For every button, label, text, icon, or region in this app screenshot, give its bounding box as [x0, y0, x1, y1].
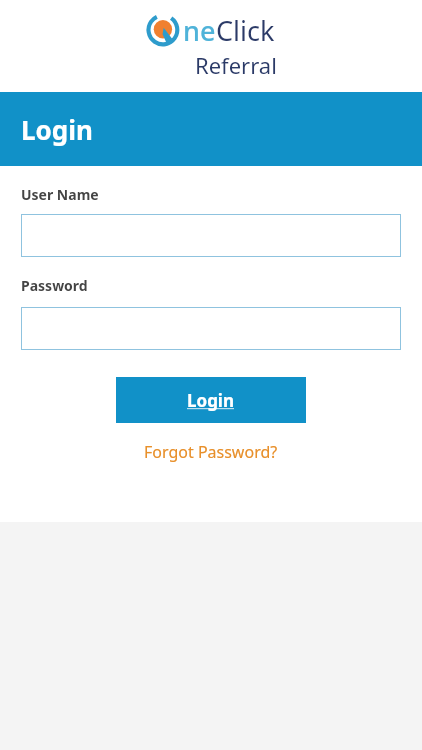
staticText: Login — [187, 389, 235, 412]
staticText: Password — [21, 276, 88, 295]
button[interactable] — [21, 214, 401, 257]
staticText: User Name — [21, 185, 99, 204]
staticText: Click — [216, 12, 275, 49]
staticText: ne — [183, 12, 216, 49]
button[interactable] — [21, 307, 401, 350]
staticText: Referral — [195, 50, 277, 80]
staticText: Login — [21, 112, 93, 147]
button[interactable]: Login — [116, 377, 306, 423]
button[interactable]: Forgot Password? — [136, 437, 286, 467]
staticText: Forgot Password? — [144, 441, 278, 463]
